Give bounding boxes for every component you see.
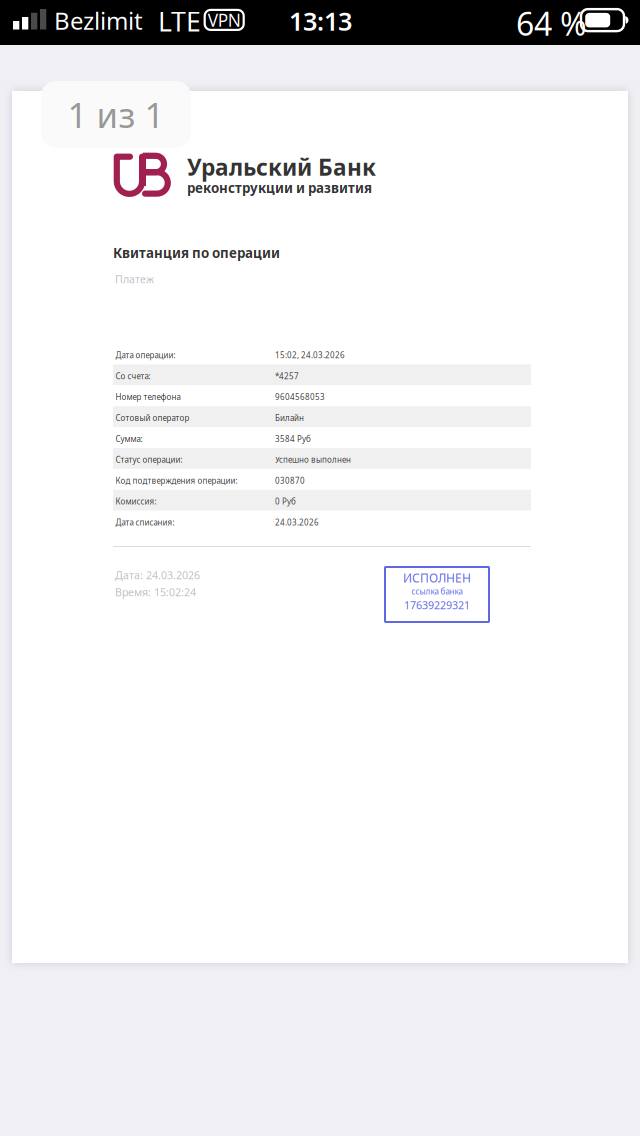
staticText: Со счета: (115, 371, 150, 381)
staticText: Сумма: (115, 433, 142, 444)
staticText: LTE (158, 3, 201, 39)
staticText: реконструкции и развития (187, 179, 372, 197)
staticText: ИСПОЛНЕН (403, 570, 471, 586)
staticText: Bezlimit (54, 4, 143, 36)
staticText: Квитанция по операции (113, 244, 280, 262)
staticText: Комиссия: (115, 496, 156, 507)
staticText: Дата списания: (115, 517, 174, 528)
staticText: 3584 Руб (275, 433, 311, 444)
staticText: Платеж (115, 272, 154, 286)
staticText: Билайн (275, 413, 304, 423)
staticText: Номер телефона (115, 392, 180, 402)
staticText: Время: 15:02:24 (115, 585, 196, 599)
staticText: 64 % (516, 2, 587, 44)
staticText: Уральский Банк (187, 152, 376, 182)
staticText: Сотовый оператор (115, 413, 189, 423)
staticText: Дата: 24.03.2026 (115, 568, 200, 582)
staticText: 1 из 1 (67, 91, 164, 137)
staticText: Статус операции: (115, 454, 182, 465)
staticText: ссылка банка (411, 586, 462, 597)
staticText: Код подтверждения операции: (115, 475, 237, 486)
staticText: 17639229321 (404, 598, 470, 612)
staticText: *4257 (275, 371, 299, 381)
staticText: 24.03.2026 (275, 517, 319, 528)
button[interactable]: 1 из 1 (41, 81, 191, 148)
staticText: 030870 (275, 475, 305, 486)
staticText: VPN (208, 8, 241, 31)
staticText: 0 Руб (275, 496, 296, 507)
staticText: Успешно выполнен (275, 454, 351, 465)
staticText: 9604568053 (275, 392, 325, 402)
staticText: Дата операции: (115, 350, 175, 360)
staticText: 15:02, 24.03.2026 (275, 350, 345, 360)
staticText: 13:13 (289, 4, 352, 38)
